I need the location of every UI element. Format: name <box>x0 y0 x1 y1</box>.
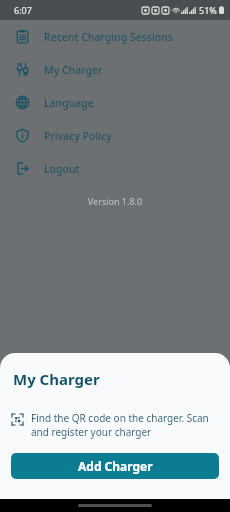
staticText: Logout <box>44 162 80 176</box>
staticText: Version 1.8.0 <box>0 195 230 207</box>
staticText: Privacy Policy <box>44 129 112 143</box>
button[interactable]: Add Charger <box>11 453 219 479</box>
button[interactable]: Language <box>0 86 230 119</box>
staticText: Find the QR code on the charger. Scan an… <box>31 411 216 439</box>
button[interactable]: Recent Charging Sessions <box>0 20 230 53</box>
staticText: Language <box>44 96 94 110</box>
staticText: 6:07 <box>14 4 32 16</box>
staticText: My Charger <box>13 369 100 389</box>
staticText: Recent Charging Sessions <box>44 30 173 44</box>
button[interactable]: Privacy Policy <box>0 119 230 152</box>
staticText: 51% <box>199 4 217 16</box>
button[interactable]: Logout <box>0 152 230 185</box>
staticText: Add Charger <box>78 458 153 474</box>
button[interactable]: My Charger <box>0 53 230 86</box>
staticText: My Charger <box>44 63 103 77</box>
